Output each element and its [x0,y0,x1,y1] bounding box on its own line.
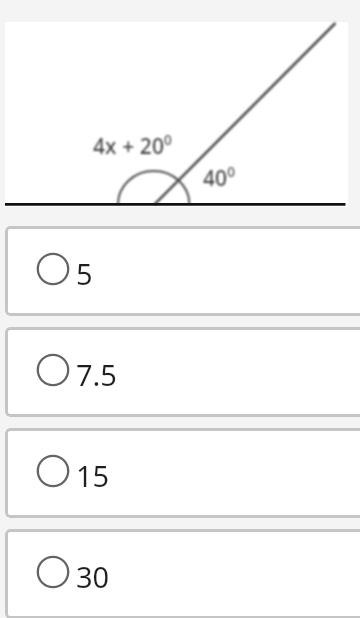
staticText: 5 [76,254,93,293]
button[interactable]: 30 [5,529,360,618]
staticText: 30 [76,557,110,596]
staticText: 7.5 [76,355,117,394]
button[interactable]: 7.5 [5,327,360,417]
button[interactable]: 15 [5,428,360,518]
staticText: 4x + 200 [93,131,172,161]
button[interactable]: 5 [5,226,360,316]
staticText: 15 [76,456,110,495]
staticText: 400 [203,163,236,193]
